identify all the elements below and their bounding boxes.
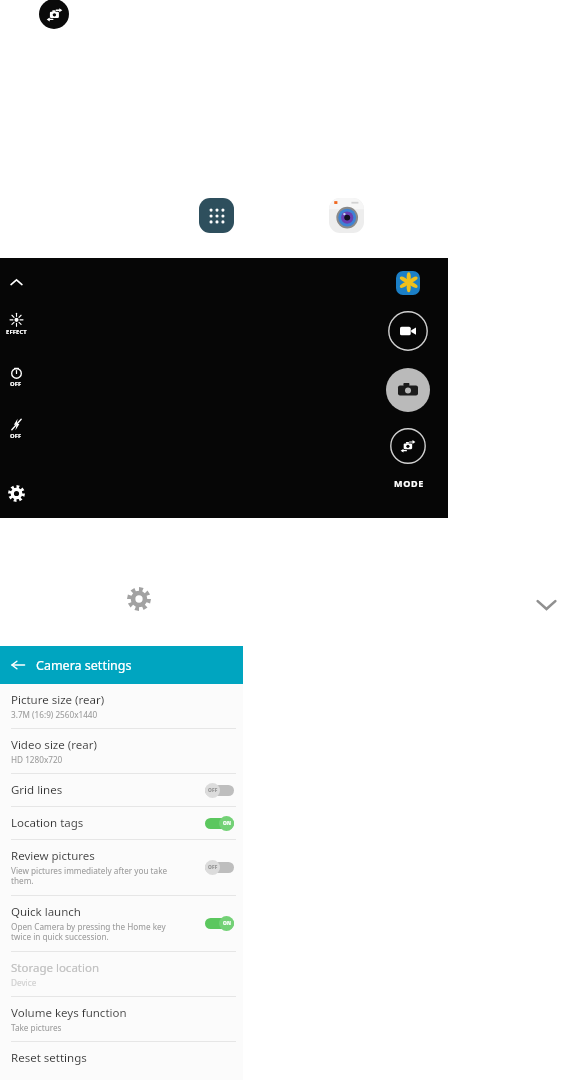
button[interactable]: Volume keys function (0, 997, 243, 1041)
button[interactable]: Review pictures (0, 840, 243, 895)
button[interactable]: Apps (199, 198, 234, 233)
button[interactable]: Camera settings (5, 482, 27, 504)
staticText: View pictures immediately after you take… (11, 865, 168, 887)
staticText: Device (11, 977, 37, 988)
staticText: Grid lines (11, 782, 63, 798)
staticText: MODE (394, 477, 425, 489)
button[interactable]: Location tags (0, 807, 243, 839)
button[interactable]: Timer (2, 365, 30, 395)
staticText: Storage location (11, 960, 100, 976)
button[interactable]: Switch camera (390, 428, 426, 464)
button[interactable]: Storage location (0, 952, 243, 996)
staticText: Picture size (rear) (11, 692, 105, 708)
staticText: OFF (10, 380, 22, 388)
button[interactable]: Picture size (rear) (0, 684, 243, 728)
staticText: HD 1280x720 (11, 754, 63, 765)
staticText: Camera settings (36, 657, 132, 674)
button[interactable]: Video size (rear) (0, 729, 243, 773)
staticText: EFFECT (6, 328, 27, 336)
staticText: OFF (10, 432, 22, 440)
button[interactable]: Off (205, 783, 234, 798)
staticText: 3.7M (16:9) 2560x1440 (11, 709, 98, 720)
button[interactable]: Show more (5, 271, 27, 293)
staticText: OFF (208, 864, 218, 871)
button[interactable]: Switch camera (39, 0, 69, 29)
button[interactable]: Expand (531, 589, 561, 619)
button[interactable]: Flash (2, 417, 30, 447)
button[interactable]: Record video (388, 311, 428, 351)
button[interactable]: Grid lines (0, 774, 243, 806)
button[interactable]: On (205, 816, 234, 831)
button[interactable]: Camera settings (0, 646, 243, 684)
button[interactable]: Camera app (329, 198, 364, 233)
button[interactable]: Settings (126, 586, 152, 612)
staticText: Reset settings (11, 1050, 87, 1066)
staticText: Take pictures (11, 1022, 62, 1033)
button[interactable]: Off (205, 860, 234, 875)
button[interactable]: Quick launch (0, 896, 243, 951)
button[interactable]: Reset settings (0, 1042, 243, 1074)
staticText: Open Camera by pressing the Home key twi… (11, 921, 166, 943)
button[interactable]: Take picture (386, 368, 430, 412)
staticText: Volume keys function (11, 1005, 127, 1021)
staticText: Quick launch (11, 904, 81, 920)
button[interactable]: Gallery (396, 271, 420, 295)
staticText: ON (223, 820, 231, 827)
staticText: Location tags (11, 815, 84, 831)
staticText: ON (223, 920, 231, 927)
button[interactable]: On (205, 916, 234, 931)
button[interactable]: Effect (2, 313, 30, 343)
staticText: Video size (rear) (11, 737, 97, 753)
staticText: OFF (208, 787, 218, 794)
staticText: Review pictures (11, 848, 95, 864)
button[interactable]: MODE (385, 472, 433, 494)
